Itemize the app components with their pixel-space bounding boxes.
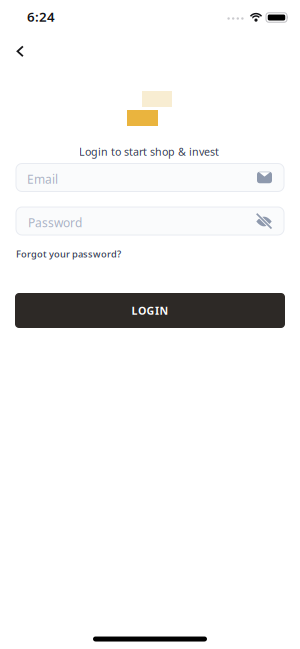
staticText: Login to start shop & invest [79, 144, 219, 159]
button[interactable]: Back [6, 35, 34, 67]
staticText: 6:24 [27, 8, 55, 25]
staticText: Email [27, 171, 58, 187]
staticText: LOGIN [131, 303, 168, 318]
button[interactable]: Password [16, 207, 284, 235]
button[interactable]: LOGIN [15, 293, 285, 328]
staticText: Password [28, 214, 82, 230]
button[interactable]: Forgot your password? [16, 248, 121, 260]
button[interactable]: Email [16, 163, 284, 191]
staticText: Forgot your password? [16, 248, 121, 260]
